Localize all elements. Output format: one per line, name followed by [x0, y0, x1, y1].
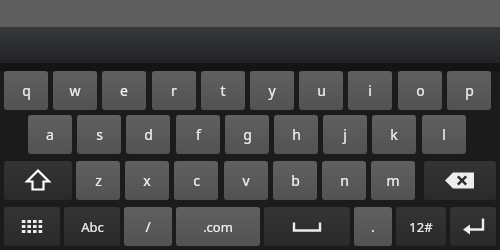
button[interactable]: /: [124, 207, 172, 246]
staticText: m: [386, 171, 400, 190]
staticText: e: [120, 81, 128, 100]
button[interactable]: Abc: [64, 207, 120, 246]
button[interactable]: d: [126, 115, 170, 154]
button[interactable]: .: [354, 207, 392, 246]
staticText: t: [220, 81, 226, 100]
button[interactable]: w: [53, 71, 97, 110]
staticText: r: [171, 81, 177, 100]
staticText: g: [243, 125, 252, 144]
button[interactable]: b: [273, 161, 317, 200]
staticText: c: [193, 171, 200, 190]
button[interactable]: Enter: [450, 207, 496, 246]
staticText: d: [144, 125, 153, 144]
button[interactable]: z: [76, 161, 120, 200]
staticText: h: [292, 125, 301, 144]
staticText: a: [46, 125, 54, 144]
staticText: j: [343, 125, 347, 144]
button[interactable]: 12#: [396, 207, 446, 246]
button[interactable]: s: [77, 115, 121, 154]
staticText: n: [340, 171, 349, 190]
button[interactable]: e: [102, 71, 146, 110]
staticText: w: [69, 81, 81, 100]
button[interactable]: m: [371, 161, 415, 200]
button[interactable]: h: [274, 115, 318, 154]
button[interactable]: Backspace: [424, 161, 496, 200]
staticText: .com: [203, 218, 233, 236]
button[interactable]: q: [4, 71, 48, 110]
button[interactable]: p: [447, 71, 491, 110]
button[interactable]: Shift: [4, 161, 72, 200]
staticText: s: [96, 125, 103, 144]
button[interactable]: n: [322, 161, 366, 200]
button[interactable]: u: [299, 71, 343, 110]
button[interactable]: j: [323, 115, 367, 154]
staticText: k: [390, 125, 398, 144]
button[interactable]: x: [125, 161, 169, 200]
button[interactable]: k: [372, 115, 416, 154]
button[interactable]: l: [422, 115, 466, 154]
button[interactable]: a: [28, 115, 72, 154]
staticText: q: [22, 81, 31, 100]
staticText: x: [143, 171, 151, 190]
button[interactable]: Switch keyboard: [4, 207, 60, 246]
staticText: Abc: [81, 218, 104, 236]
staticText: o: [416, 81, 425, 100]
staticText: l: [442, 125, 446, 144]
staticText: v: [242, 171, 250, 190]
button[interactable]: i: [348, 71, 392, 110]
button[interactable]: v: [224, 161, 268, 200]
button[interactable]: o: [398, 71, 442, 110]
button[interactable]: c: [174, 161, 218, 200]
button[interactable]: r: [152, 71, 196, 110]
staticText: p: [465, 81, 474, 100]
button[interactable]: y: [250, 71, 294, 110]
staticText: y: [268, 81, 276, 100]
staticText: z: [95, 171, 102, 190]
staticText: i: [368, 81, 372, 100]
staticText: u: [317, 81, 326, 100]
staticText: .: [371, 217, 375, 236]
staticText: /: [145, 217, 151, 236]
staticText: 12#: [409, 218, 433, 236]
button[interactable]: Space: [264, 207, 350, 246]
button[interactable]: t: [201, 71, 245, 110]
staticText: b: [291, 171, 300, 190]
button[interactable]: .com: [176, 207, 260, 246]
button[interactable]: g: [225, 115, 269, 154]
button[interactable]: f: [176, 115, 220, 154]
staticText: f: [196, 125, 201, 144]
